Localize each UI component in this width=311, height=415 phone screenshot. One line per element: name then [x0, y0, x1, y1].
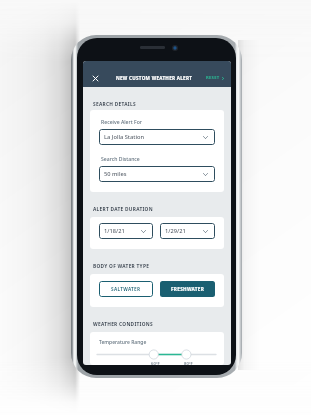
button[interactable]: RESET — [206, 75, 231, 81]
staticText: La Jolla Station — [104, 133, 145, 141]
button[interactable]: 50 miles — [99, 166, 215, 182]
button[interactable]: FRESHWATER — [160, 281, 215, 297]
button[interactable]: 1/18/21 — [99, 223, 153, 239]
button[interactable]: 1/29/21 — [160, 223, 215, 239]
staticText: RESET — [206, 75, 220, 81]
staticText: Receive Alert For — [101, 119, 142, 126]
staticText: SALTWATER — [111, 286, 141, 292]
staticText: Search Distance — [101, 156, 140, 163]
staticText: 50 miles — [104, 170, 127, 178]
staticText: FRESHWATER — [171, 286, 205, 292]
staticText: 80°F — [184, 361, 193, 365]
staticText: BODY OF WATER TYPE — [93, 263, 150, 270]
button[interactable]: La Jolla Station — [99, 129, 215, 145]
staticText: SEARCH DETAILS — [93, 101, 136, 108]
staticText: WEATHER CONDITIONS — [93, 321, 153, 328]
button[interactable]: Close — [86, 69, 104, 87]
staticText: Temperature Range — [99, 339, 147, 346]
staticText: NEW CUSTOM WEATHER ALERT — [116, 75, 193, 81]
staticText: 60°F — [151, 361, 160, 365]
staticText: 1/18/21 — [104, 227, 125, 235]
staticText: ALERT DATE DURATION — [93, 206, 153, 213]
staticText: 1/29/21 — [165, 227, 186, 235]
button[interactable]: SALTWATER — [99, 281, 153, 297]
